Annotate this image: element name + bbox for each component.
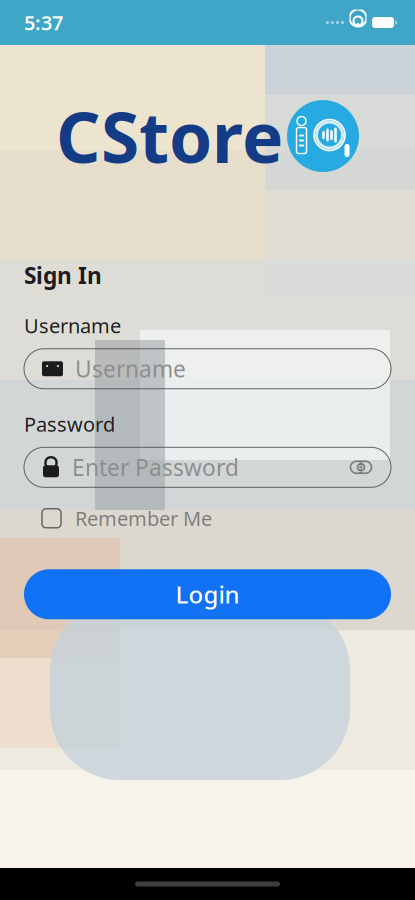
staticText: Remember Me [75,505,212,532]
staticText: Login [175,578,239,610]
button[interactable]: Enter Password [24,447,391,487]
staticText: Username [24,312,121,339]
staticText: Password [24,411,115,437]
staticText: Enter Password [72,452,239,482]
button[interactable]: Username [24,349,391,389]
staticText: 5:37 [24,9,63,36]
button[interactable]: Login [24,569,391,619]
staticText: CStore [56,90,283,182]
button[interactable]: Remember Me [24,503,391,533]
staticText: Username [75,354,186,384]
staticText: Sign In [24,260,102,290]
